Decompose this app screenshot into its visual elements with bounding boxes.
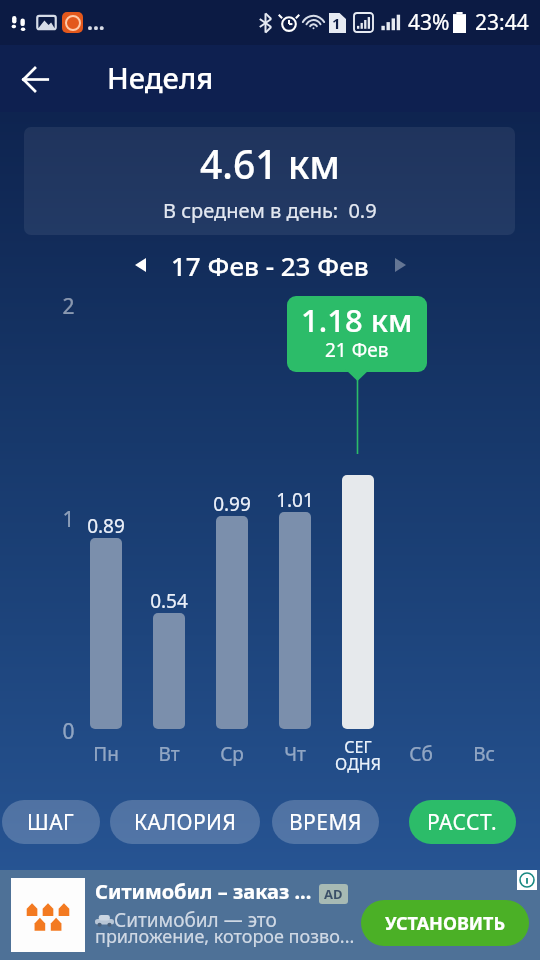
button[interactable]: 1.18 км: [287, 296, 427, 372]
button[interactable]: УСТАНОВИТЬ: [361, 900, 529, 946]
button[interactable]: [90, 538, 122, 729]
staticText: 21 Фев: [325, 337, 389, 363]
staticText: УСТАНОВИТЬ: [385, 911, 506, 936]
button[interactable]: РАССТ.: [409, 800, 516, 844]
button[interactable]: КАЛОРИЯ: [110, 800, 260, 844]
staticText: ...: [87, 8, 105, 37]
staticText: 1: [332, 13, 341, 33]
staticText: 1.01: [276, 487, 314, 513]
staticText: СЕГ ОДНЯ: [335, 736, 381, 774]
staticText: Ситимобил — это: [114, 907, 277, 933]
staticText: КАЛОРИЯ: [134, 808, 237, 837]
staticText: Вт: [158, 741, 180, 767]
staticText: 43%: [408, 8, 450, 37]
button[interactable]: [279, 512, 311, 729]
button[interactable]: Previous week: [122, 245, 158, 285]
staticText: 4.61 км: [200, 137, 341, 190]
staticText: Неделя: [107, 58, 214, 97]
button[interactable]: [216, 516, 248, 729]
staticText: В среднем в день: 0.9: [163, 197, 377, 224]
staticText: Ср: [220, 741, 244, 767]
staticText: Вс: [473, 741, 495, 767]
staticText: 0.99: [213, 491, 251, 517]
staticText: Ситимобил – заказ ...: [95, 878, 312, 905]
staticText: ШАГ: [27, 808, 75, 837]
staticText: 2: [62, 292, 75, 321]
button[interactable]: 4.61 км: [24, 127, 515, 235]
button[interactable]: [153, 613, 185, 729]
staticText: Пн: [93, 741, 119, 767]
staticText: 1: [62, 505, 75, 534]
staticText: 0.89: [87, 513, 125, 539]
staticText: ВРЕМЯ: [289, 808, 362, 837]
button[interactable]: [342, 475, 374, 729]
staticText: РАССТ.: [427, 808, 498, 837]
button[interactable]: Next week: [382, 245, 418, 285]
button[interactable]: ВРЕМЯ: [272, 800, 379, 844]
staticText: 0: [62, 717, 75, 746]
staticText: 23:44: [475, 8, 529, 37]
staticText: 0.54: [150, 588, 188, 614]
staticText: 1.18 км: [301, 299, 413, 341]
staticText: AD: [324, 885, 343, 903]
button[interactable]: Back: [11, 55, 59, 103]
staticText: Чт: [284, 741, 306, 767]
staticText: приложение, которое позво...: [95, 924, 355, 949]
staticText: 17 Фев - 23 Фев: [171, 248, 369, 283]
staticText: Сб: [409, 741, 433, 767]
button[interactable]: Ad info: [517, 870, 537, 890]
button[interactable]: ШАГ: [2, 800, 100, 844]
